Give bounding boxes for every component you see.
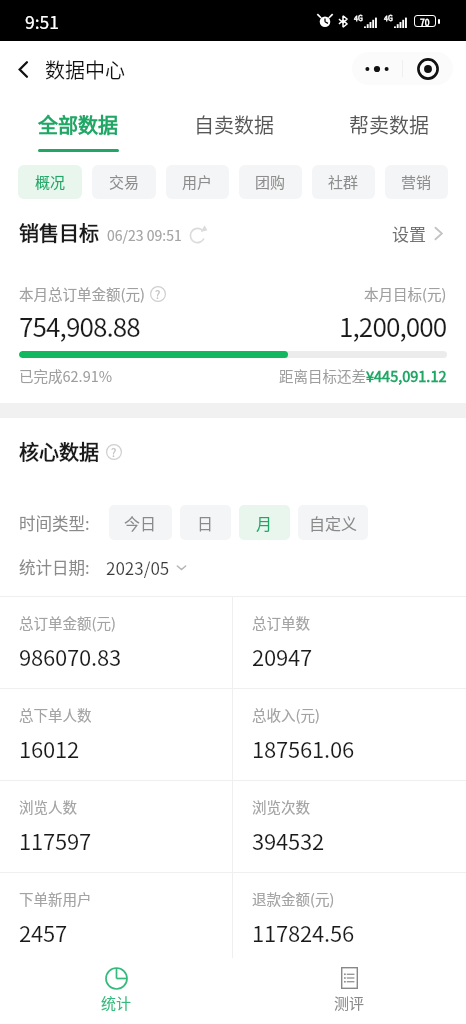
staticText: 总收入(元) (252, 704, 320, 725)
staticText: 9:51 (25, 9, 60, 34)
staticText: 187561.06 (252, 732, 354, 764)
staticText: 2457 (19, 916, 68, 948)
staticText: 数据中心 (45, 55, 125, 84)
staticText: 20947 (252, 640, 313, 672)
staticText: 今日 (124, 511, 157, 534)
staticText: 394532 (252, 824, 325, 856)
staticText: 距离目标还差 (279, 365, 366, 386)
staticText: 概况 (35, 171, 66, 193)
staticText: 自定义 (309, 511, 358, 534)
staticText: 用户 (182, 171, 213, 193)
staticText: 帮卖数据 (349, 110, 429, 139)
staticText: 1,200,000 (339, 307, 447, 345)
staticText: 总订单金额(元) (19, 612, 116, 633)
button[interactable]: 2023/05 (106, 555, 188, 579)
button[interactable]: 退款金额(元) (233, 872, 466, 964)
button[interactable]: 概况 (18, 165, 82, 199)
button[interactable]: 总收入(元) (233, 688, 466, 780)
staticText: 754,908.88 (19, 307, 140, 345)
staticText: 全部数据 (38, 110, 118, 139)
staticText: 月 (256, 511, 273, 534)
staticText: 已完成62.91% (19, 365, 113, 386)
button[interactable]: 日 (180, 505, 231, 540)
staticText: 2023/05 (106, 555, 170, 579)
staticText: 交易 (109, 171, 140, 193)
staticText: 本月目标(元) (364, 283, 447, 304)
staticText: ? (155, 286, 161, 302)
other: Back (6, 52, 40, 86)
button[interactable]: 营销 (385, 165, 448, 199)
staticText: 986070.83 (19, 640, 121, 672)
staticText: 117824.56 (252, 916, 354, 948)
staticText: 销售目标 (19, 218, 99, 247)
staticText: 06/23 09:51 (107, 225, 182, 245)
button[interactable]: 测评 (233, 958, 466, 1024)
button[interactable]: 交易 (92, 165, 156, 199)
staticText: 下单新用户 (19, 888, 92, 909)
button[interactable]: 总订单金额(元) (0, 596, 232, 688)
button[interactable]: Back (6, 52, 125, 86)
button[interactable]: 总订单数 (233, 596, 466, 688)
staticText: 核心数据 (19, 437, 99, 466)
staticText: 浏览次数 (252, 796, 310, 817)
staticText: 总订单数 (252, 612, 310, 633)
staticText: 自卖数据 (194, 110, 274, 139)
button[interactable]: 自定义 (298, 505, 368, 540)
staticText: 统计日期: (19, 555, 90, 579)
button[interactable]: 自卖数据 (156, 96, 311, 160)
button[interactable]: 月 (239, 505, 290, 540)
button[interactable]: 设置 (392, 221, 447, 246)
button[interactable]: 浏览人数 (0, 780, 232, 872)
button[interactable]: 浏览次数 (233, 780, 466, 872)
staticText: 统计 (101, 992, 132, 1014)
button[interactable]: 用户 (166, 165, 229, 199)
staticText: ¥445,091.12 (366, 365, 447, 386)
staticText: 团购 (255, 171, 286, 193)
staticText: 4G (354, 13, 363, 23)
staticText: 日 (197, 511, 214, 534)
button[interactable]: 总下单人数 (0, 688, 232, 780)
button[interactable]: 全部数据 (0, 96, 156, 160)
button[interactable]: 帮卖数据 (311, 96, 466, 160)
button[interactable]: 今日 (109, 505, 172, 540)
button[interactable]: 统计 (0, 958, 233, 1024)
staticText: 设置 (392, 221, 426, 246)
button[interactable]: 社群 (312, 165, 375, 199)
button[interactable]: More options (352, 52, 402, 85)
staticText: 4G (384, 13, 393, 23)
staticText: 117597 (19, 824, 92, 856)
button[interactable]: Refresh (189, 227, 206, 244)
staticText: 测评 (334, 992, 365, 1014)
button[interactable]: Close mini program (403, 52, 453, 85)
staticText: 浏览人数 (19, 796, 77, 817)
staticText: 退款金额(元) (252, 888, 335, 909)
staticText: 营销 (401, 171, 432, 193)
button[interactable]: 团购 (239, 165, 302, 199)
staticText: 70 (420, 16, 430, 26)
staticText: 时间类型: (19, 511, 90, 535)
staticText: 本月总订单金额(元) (19, 283, 145, 304)
button[interactable]: 下单新用户 (0, 872, 232, 964)
staticText: 总下单人数 (19, 704, 92, 725)
staticText: 社群 (328, 171, 359, 193)
staticText: ? (111, 444, 117, 460)
staticText: 16012 (19, 732, 80, 764)
